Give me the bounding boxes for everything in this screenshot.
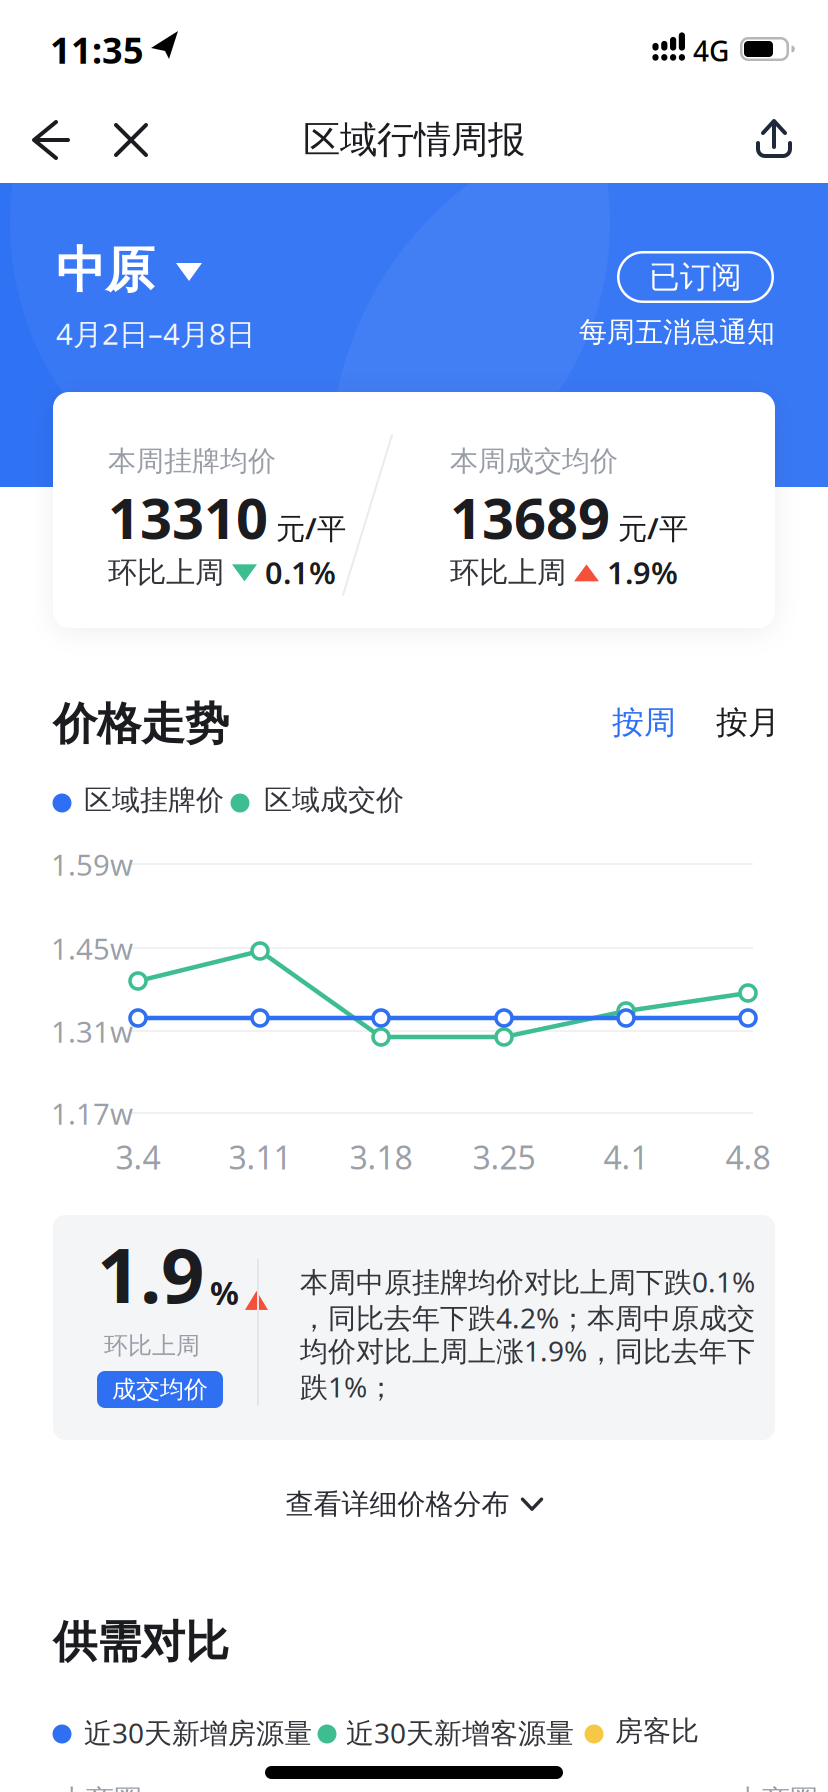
staticText: % [210, 1271, 239, 1314]
staticText: 1.9 [97, 1223, 204, 1324]
staticText: 13310 [108, 480, 268, 554]
staticText: 元/平 [618, 508, 688, 547]
button[interactable]: Close [106, 115, 156, 165]
staticText: 4G [693, 32, 729, 69]
staticText: 4.8 [725, 1136, 770, 1178]
button[interactable]: 按月 [716, 703, 780, 742]
button[interactable]: 按周 [612, 703, 676, 742]
staticText: 区域成交价 [264, 783, 404, 817]
button[interactable]: 中原 [40, 230, 212, 302]
staticText: 近30天新增房源量 [84, 1714, 312, 1751]
staticText: 按月 [716, 703, 780, 742]
staticText: 本商圈 [734, 1783, 818, 1792]
staticText: 环比上周 [104, 1331, 200, 1360]
staticText: 3.11 [228, 1136, 291, 1178]
staticText: 0.1% [265, 552, 336, 593]
staticText: 区域挂牌价 [84, 783, 224, 817]
staticText: 已订阅 [649, 258, 742, 296]
staticText: 本周中原挂牌均价对比上周下跌0.1% [300, 1263, 755, 1300]
staticText: 3.4 [115, 1136, 160, 1178]
staticText: 4月2日–4月8日 [56, 314, 255, 353]
staticText: 3.25 [472, 1136, 535, 1178]
staticText: 均价对比上周上涨1.9%，同比去年下 [300, 1332, 755, 1369]
staticText: 中原 [56, 240, 154, 301]
button[interactable]: Back [24, 112, 78, 168]
staticText: 按周 [612, 703, 676, 742]
staticText: 1.45w [51, 929, 133, 968]
staticText: 4.1 [603, 1136, 648, 1178]
staticText: 环比上周 [450, 554, 566, 590]
staticText: 每周五消息通知 [579, 315, 775, 349]
button[interactable]: Share [748, 111, 800, 166]
staticText: 成交均价 [112, 1375, 208, 1404]
staticText: 价格走势 [53, 697, 229, 751]
staticText: 元/平 [276, 508, 346, 547]
staticText: 3.18 [349, 1136, 412, 1178]
staticText: 1.31w [51, 1012, 133, 1051]
staticText: 房客比 [615, 1714, 699, 1748]
staticText: 跌1%； [300, 1368, 395, 1405]
staticText: 环比上周 [108, 554, 224, 590]
staticText: 本周成交均价 [450, 444, 618, 478]
staticText: 本商圈 [58, 1783, 142, 1792]
staticText: 1.59w [51, 845, 133, 884]
staticText: 11:35 [50, 26, 144, 74]
button[interactable]: 查看详细价格分布 [285, 1487, 542, 1521]
staticText: 查看详细价格分布 [285, 1487, 509, 1521]
staticText: 供需对比 [53, 1615, 229, 1669]
staticText: 本周挂牌均价 [108, 444, 276, 478]
button[interactable]: 成交均价 [97, 1371, 223, 1408]
staticText: 近30天新增客源量 [346, 1714, 574, 1751]
staticText: 1.17w [51, 1094, 133, 1133]
button[interactable]: 已订阅 [617, 251, 774, 303]
staticText: ，同比去年下跌4.2%；本周中原成交 [300, 1299, 755, 1336]
staticText: 13689 [450, 480, 610, 554]
staticText: 区域行情周报 [303, 117, 525, 163]
staticText: 1.9% [607, 552, 678, 593]
